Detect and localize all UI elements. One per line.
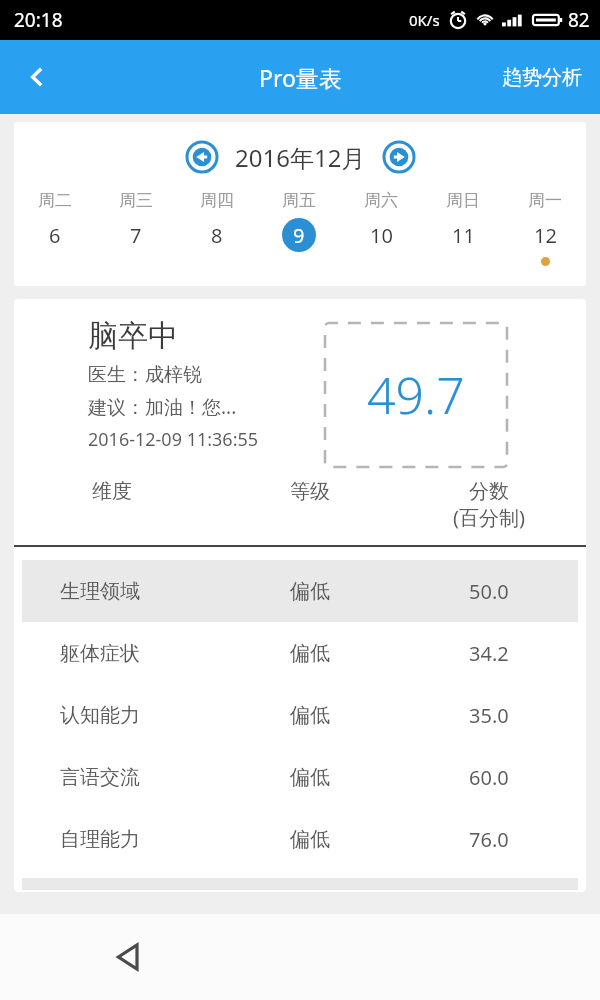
staticText: 偏低	[290, 641, 330, 666]
staticText: (百分制)	[453, 504, 525, 531]
staticText: 49.7	[367, 361, 465, 429]
button[interactable]: 周二	[14, 190, 95, 266]
button[interactable]: 生理领域	[22, 560, 578, 622]
staticText: 11	[452, 222, 475, 249]
staticText: 76.0	[469, 826, 509, 853]
staticText: 言语交流	[60, 765, 140, 790]
staticText: 周三	[119, 190, 153, 211]
staticText: 6	[49, 222, 61, 249]
staticText: 周日	[446, 190, 480, 211]
staticText: 周六	[364, 190, 398, 211]
button[interactable]: 躯体症状	[22, 622, 578, 684]
staticText: 周四	[200, 190, 234, 211]
staticText: 脑卒中	[88, 317, 178, 355]
button[interactable]: 认知能力	[22, 684, 578, 746]
staticText: 分数	[469, 479, 509, 504]
staticText: 生理领域	[60, 579, 140, 604]
staticText: 50.0	[469, 578, 509, 605]
staticText: 偏低	[290, 703, 330, 728]
staticText: 建议：加油！您...	[88, 394, 237, 420]
button[interactable]: Back	[98, 927, 158, 987]
staticText: 医生：成梓锐	[88, 363, 202, 387]
staticText: 12	[534, 222, 557, 249]
staticText: 35.0	[469, 702, 509, 729]
button[interactable]: 周六	[340, 190, 422, 266]
staticText: 8	[211, 222, 223, 249]
staticText: 34.2	[469, 640, 509, 667]
staticText: 2016-12-09 11:36:55	[88, 427, 259, 452]
staticText: 60.0	[469, 764, 509, 791]
staticText: 82	[568, 7, 590, 33]
staticText: 周五	[282, 190, 316, 211]
staticText: Pro量表	[259, 62, 342, 93]
button[interactable]: Next month	[378, 136, 420, 178]
staticText: 躯体症状	[60, 641, 140, 666]
staticText: 维度	[92, 479, 132, 504]
staticText: 9	[293, 222, 305, 249]
staticText: 7	[130, 222, 142, 249]
button[interactable]: 周三	[95, 190, 176, 266]
staticText: 10	[370, 222, 393, 249]
staticText: 周一	[528, 190, 562, 211]
staticText: 趋势分析	[502, 65, 582, 90]
button[interactable]: 言语交流	[22, 746, 578, 808]
staticText: 周二	[38, 190, 72, 211]
button[interactable]: 周一	[504, 190, 586, 266]
button[interactable]: 趋势分析	[484, 40, 600, 114]
staticText: 偏低	[290, 827, 330, 852]
staticText: 20:18	[14, 7, 63, 33]
staticText: 偏低	[290, 579, 330, 604]
staticText: 认知能力	[60, 703, 140, 728]
button[interactable]: 周四	[176, 190, 258, 266]
staticText: 偏低	[290, 765, 330, 790]
button[interactable]: 周五	[258, 190, 340, 266]
staticText: 等级	[290, 479, 330, 504]
button[interactable]: 自理能力	[22, 808, 578, 870]
staticText: 2016年12月	[235, 141, 366, 174]
button[interactable]: Previous month	[181, 136, 223, 178]
button[interactable]: Back	[0, 40, 74, 114]
button[interactable]: 周日	[422, 190, 504, 266]
staticText: 自理能力	[60, 827, 140, 852]
staticText: 0K/s	[409, 10, 440, 30]
